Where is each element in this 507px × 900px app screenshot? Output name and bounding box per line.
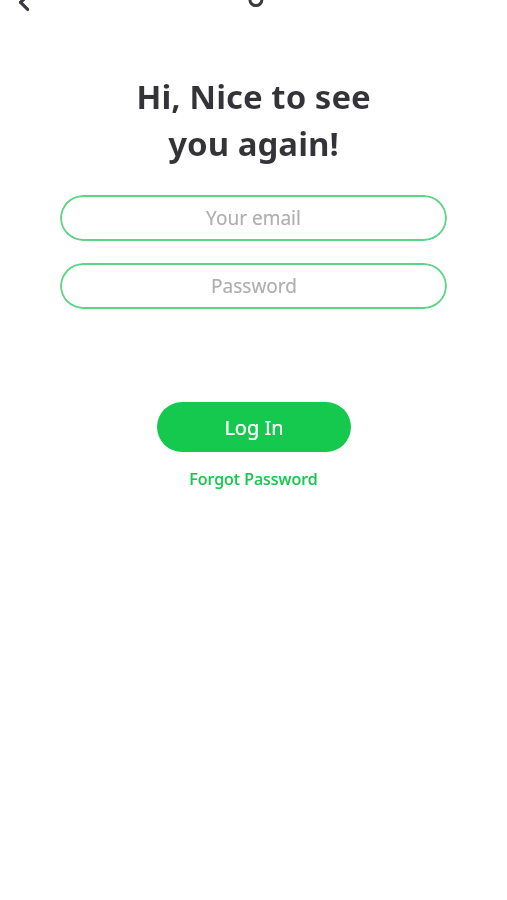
button[interactable]: Back <box>14 0 36 13</box>
button[interactable]: Log In <box>157 402 351 452</box>
staticText: Log In <box>224 414 284 441</box>
button[interactable]: Your email <box>60 195 447 241</box>
button[interactable]: Forgot Password <box>179 464 328 494</box>
button[interactable]: Password <box>60 263 447 309</box>
staticText: Forgot Password <box>189 468 318 490</box>
staticText: Your email <box>206 205 301 231</box>
staticText: Password <box>211 273 297 299</box>
staticText: Hi, Nice to see you again! <box>0 74 507 166</box>
